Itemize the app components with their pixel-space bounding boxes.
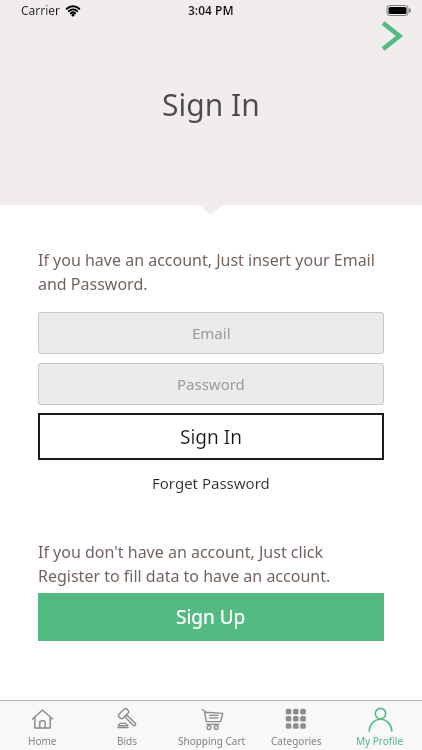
button[interactable] xyxy=(374,14,411,51)
staticText: Home xyxy=(28,734,57,748)
button[interactable]: Shopping Cart xyxy=(170,701,254,750)
button[interactable]: Categories xyxy=(254,701,338,750)
button[interactable]: Sign Up xyxy=(38,593,384,641)
staticText: Sign Up xyxy=(176,604,246,630)
staticText: My Profile xyxy=(356,734,404,748)
staticText: Shopping Cart xyxy=(178,734,246,748)
staticText: If you have an account, Just insert your… xyxy=(38,249,375,295)
button[interactable]: Sign In xyxy=(38,413,384,460)
staticText: Sign In xyxy=(162,84,260,125)
staticText: Sign In xyxy=(180,424,242,450)
button[interactable]: Forget Password xyxy=(152,473,270,493)
button[interactable]: Bids xyxy=(85,701,170,750)
staticText: 3:04 PM xyxy=(188,2,234,18)
staticText: If you don't have an account, Just click… xyxy=(38,541,331,587)
button[interactable]: Password xyxy=(38,363,384,405)
button[interactable]: Email xyxy=(38,312,384,354)
staticText: Email xyxy=(192,323,231,343)
staticText: Bids xyxy=(117,734,138,748)
staticText: Password xyxy=(177,374,245,394)
button[interactable]: Home xyxy=(0,701,85,750)
staticText: Carrier xyxy=(21,2,61,18)
staticText: Categories xyxy=(271,734,322,748)
button[interactable]: My Profile xyxy=(338,701,422,750)
